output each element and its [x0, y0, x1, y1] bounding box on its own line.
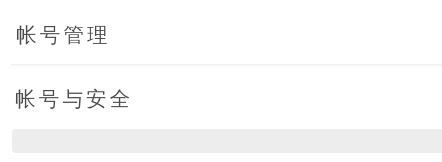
- button[interactable]: 帐号管理: [0, 3, 442, 67]
- button[interactable]: 帐号与安全: [0, 67, 442, 131]
- staticText: 帐号与安全: [15, 86, 134, 112]
- staticText: 帐号管理: [16, 22, 111, 48]
